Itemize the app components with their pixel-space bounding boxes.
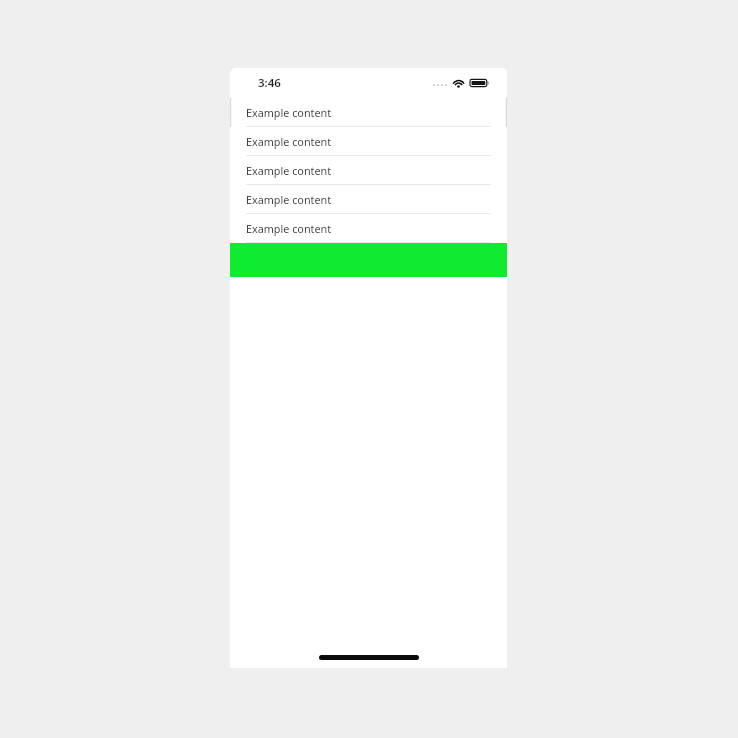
staticText: Example content — [246, 134, 332, 149]
button[interactable]: Example content — [230, 98, 507, 127]
staticText: Example content — [246, 192, 332, 207]
button[interactable]: Example content — [230, 214, 507, 243]
staticText: Example content — [246, 221, 332, 236]
button[interactable]: Example content — [230, 185, 507, 214]
staticText: Example content — [246, 163, 332, 178]
staticText: Example content — [246, 105, 332, 120]
button[interactable]: Example content — [230, 127, 507, 156]
staticText: 3:46 — [258, 75, 281, 91]
button[interactable]: Example content — [230, 156, 507, 185]
